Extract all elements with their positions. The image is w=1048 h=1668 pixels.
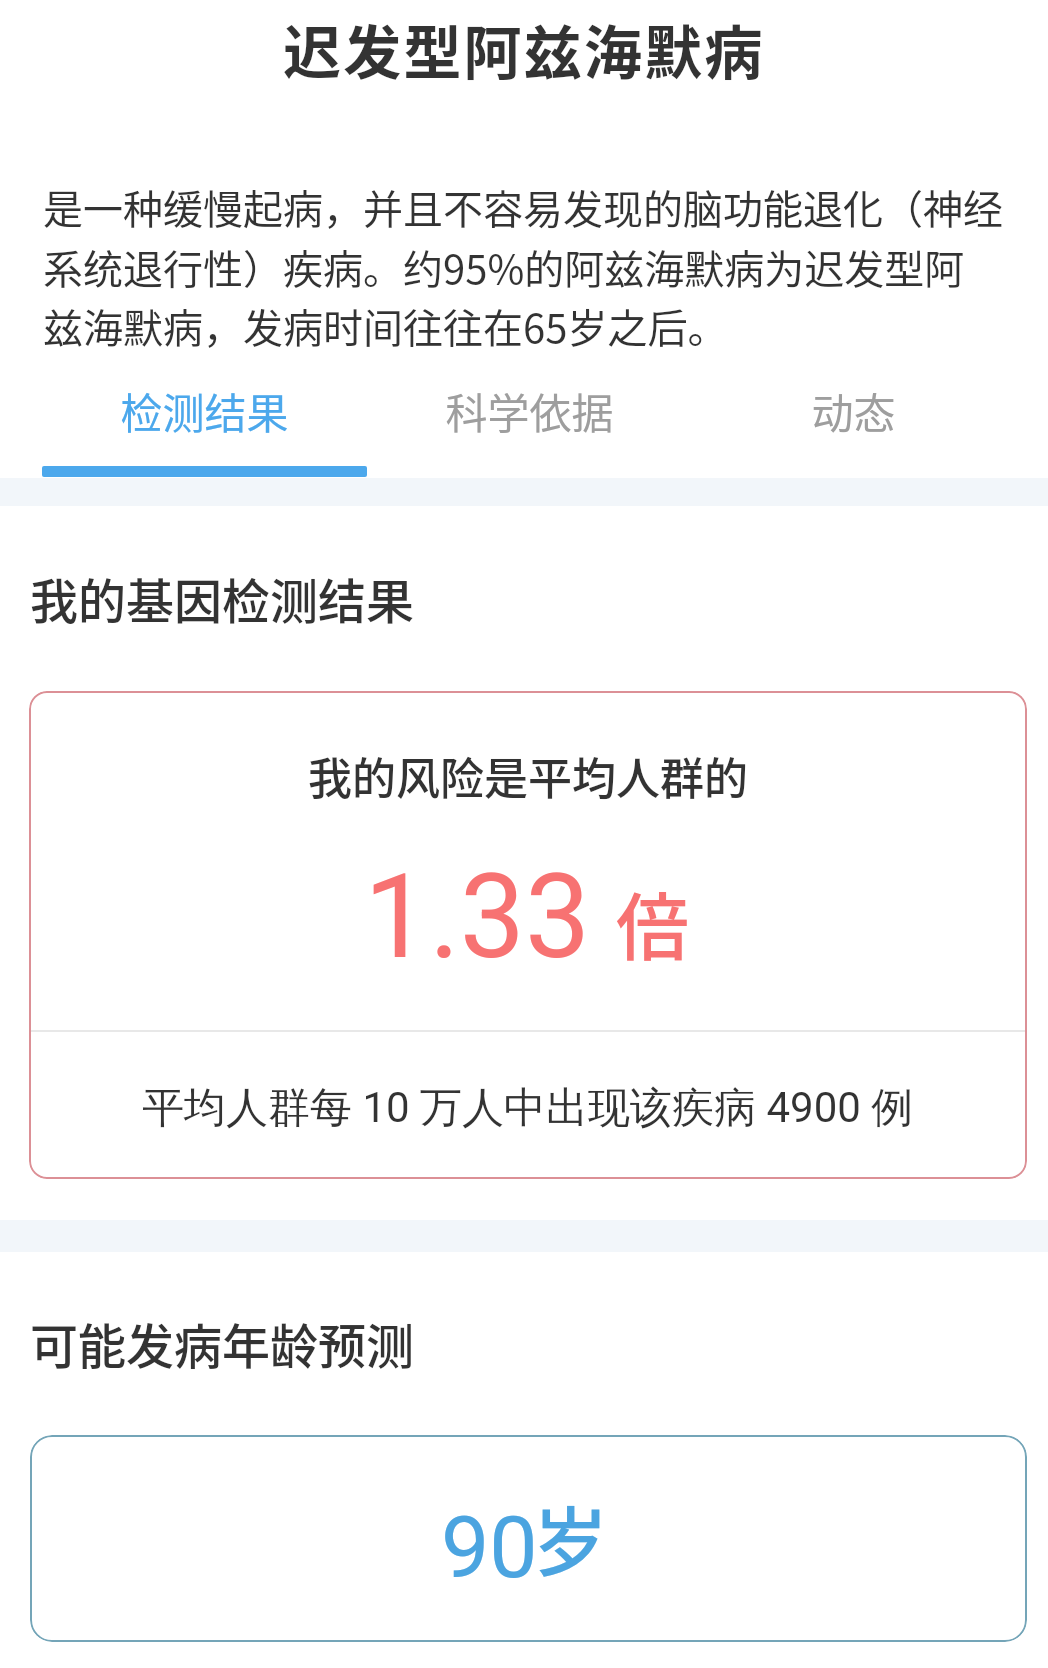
button[interactable]: 动态 — [691, 380, 1015, 478]
staticText: 我的基因检测结果 — [30, 563, 415, 633]
staticText: 我的风险是平均人群的 — [308, 744, 748, 808]
button[interactable]: 我的风险是平均人群的 — [29, 691, 1027, 1179]
staticText: 可能发病年龄预测 — [30, 1308, 415, 1378]
staticText: 1.33 — [364, 849, 591, 985]
staticText: 90 — [441, 1497, 538, 1598]
staticText: 科学依据 — [445, 380, 614, 441]
staticText: 是一种缓慢起病，并且不容易发现的脑功能退化（神经 系统退行性）疾病。约95%的阿… — [43, 178, 1003, 354]
staticText: 岁 — [533, 1483, 609, 1592]
staticText: 迟发型阿兹海默病 — [283, 7, 765, 91]
staticText: 倍 — [616, 869, 689, 975]
staticText: 检测结果 — [120, 380, 289, 441]
staticText: 动态 — [811, 380, 896, 441]
button[interactable]: 检测结果 — [42, 380, 367, 478]
button[interactable]: 90 — [30, 1435, 1027, 1642]
staticText: 平均人群每 10 万人中出现该疾病 4900 例 — [142, 1082, 914, 1135]
button[interactable]: 科学依据 — [367, 380, 691, 478]
